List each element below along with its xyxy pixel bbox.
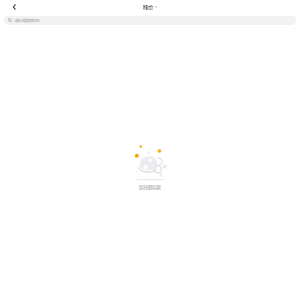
staticText: 附近仓 — [143, 4, 153, 10]
button[interactable]: 附近仓 — [139, 1, 161, 13]
staticText: 暂无搜索结果 — [138, 183, 161, 190]
staticText: 请输入需要搜索的地址 — [14, 18, 41, 23]
button[interactable]: Back — [0, 0, 23, 14]
